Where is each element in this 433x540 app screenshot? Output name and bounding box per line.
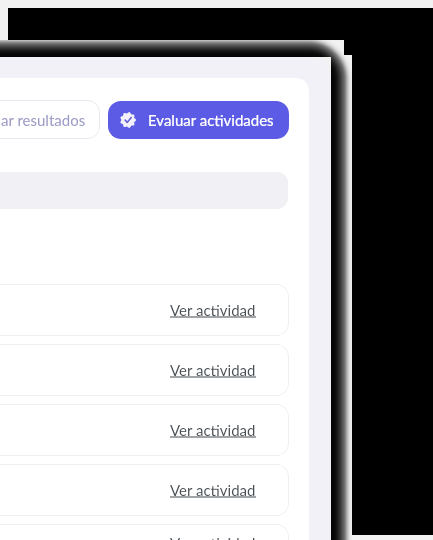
staticText: Ver actividad xyxy=(170,361,256,379)
staticText: Ver actividad xyxy=(170,534,256,540)
staticText: ar resultados xyxy=(1,111,86,129)
button[interactable]: Ver actividad xyxy=(0,344,289,396)
button[interactable]: Evaluar actividades xyxy=(108,101,289,139)
button[interactable]: Ver actividad xyxy=(0,524,289,540)
staticText: Evaluar actividades xyxy=(148,111,274,129)
button[interactable]: Ver actividad xyxy=(0,284,289,336)
button[interactable]: Ver actividad xyxy=(0,404,289,456)
staticText: Ver actividad xyxy=(170,301,256,319)
button[interactable]: ar resultados xyxy=(0,100,100,139)
staticText: Ver actividad xyxy=(170,421,256,439)
staticText: Ver actividad xyxy=(170,481,256,499)
button[interactable]: Ver actividad xyxy=(0,464,289,516)
